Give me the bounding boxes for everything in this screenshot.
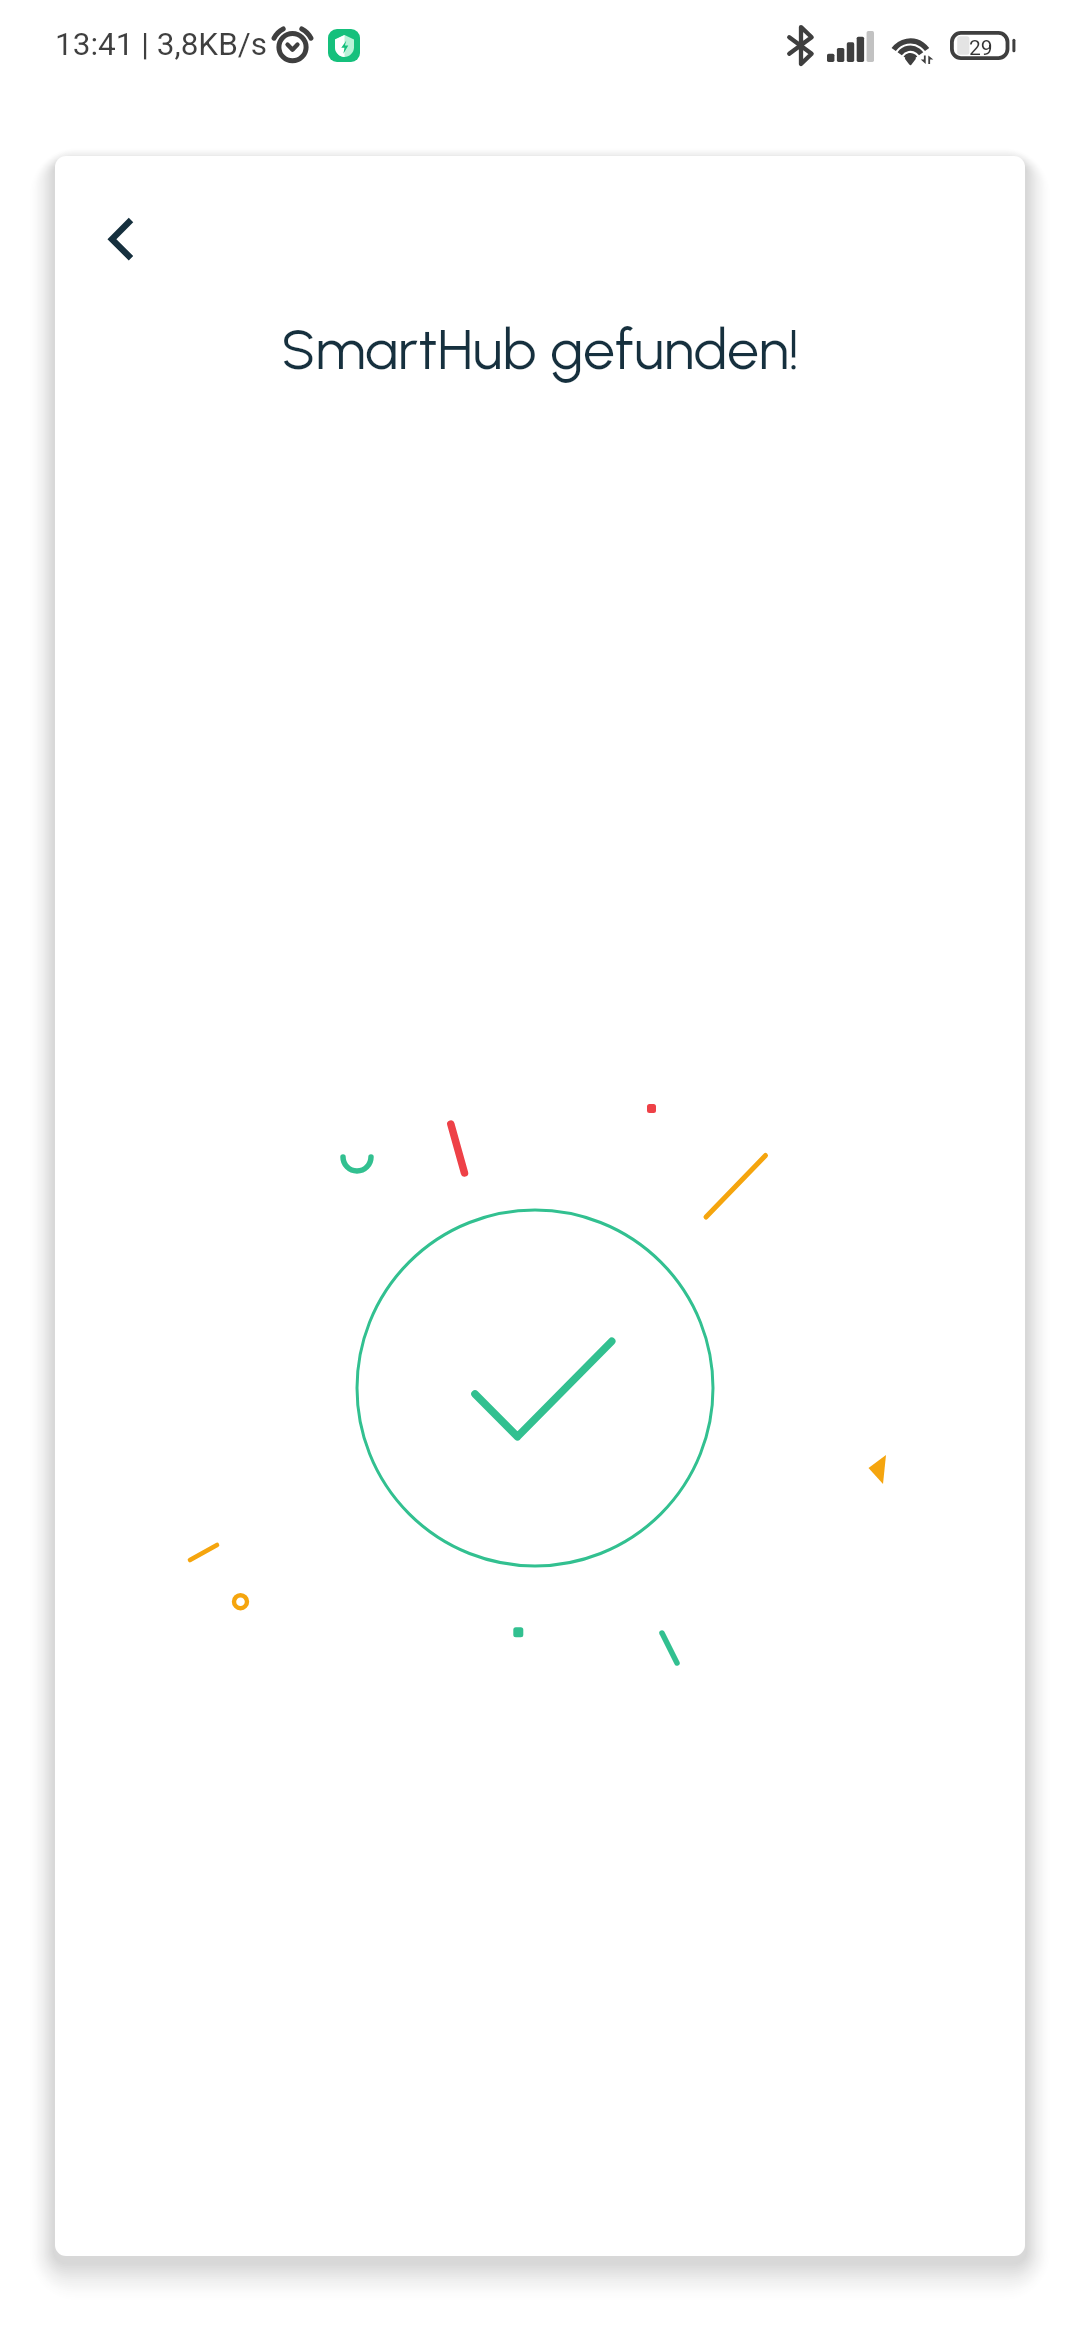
staticText: SmartHub gefunden! [55,315,1025,383]
button[interactable]: Back [77,179,187,289]
staticText: 29 [969,36,993,61]
staticText: 13:41 | 3,8KB/s [55,26,268,63]
